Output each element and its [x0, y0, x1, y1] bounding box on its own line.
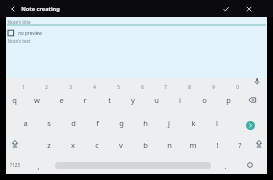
button[interactable]: z: [38, 137, 60, 153]
staticText: k: [191, 118, 196, 128]
button[interactable]: Note's title: [7, 17, 127, 26]
button[interactable]: !: [206, 137, 228, 153]
button[interactable]: [241, 116, 259, 134]
button[interactable]: m: [182, 137, 204, 153]
staticText: d: [71, 118, 76, 128]
button[interactable]: Note's text: [7, 36, 127, 45]
staticText: 3: [69, 84, 72, 90]
button[interactable]: [219, 2, 233, 16]
button[interactable]: n: [158, 137, 180, 153]
button[interactable]: p: [217, 92, 239, 108]
button[interactable]: k: [182, 115, 204, 131]
staticText: l: [216, 118, 218, 128]
button[interactable]: x: [62, 137, 84, 153]
staticText: m: [189, 140, 197, 150]
staticText: g: [119, 118, 124, 128]
button[interactable]: ,: [27, 158, 49, 174]
staticText: w: [34, 95, 40, 105]
staticText: h: [143, 118, 148, 128]
button[interactable]: r: [74, 92, 96, 108]
staticText: 9: [212, 84, 215, 90]
button[interactable]: e: [50, 92, 72, 108]
button[interactable]: .: [214, 158, 236, 174]
staticText: 5: [117, 84, 120, 90]
staticText: x: [71, 140, 75, 150]
staticText: Note's title: [7, 19, 31, 25]
staticText: y: [131, 95, 135, 105]
button[interactable]: o: [193, 92, 215, 108]
staticText: 6: [141, 84, 144, 90]
button[interactable]: q: [3, 92, 25, 108]
staticText: a: [23, 118, 28, 128]
staticText: 2: [45, 84, 48, 90]
staticText: 0: [236, 84, 239, 90]
button[interactable]: ?123: [4, 158, 26, 172]
staticText: ,: [37, 161, 40, 171]
staticText: 8: [188, 84, 191, 90]
staticText: s: [47, 118, 51, 128]
staticText: .: [224, 161, 227, 171]
button[interactable]: [242, 2, 256, 16]
staticText: Note's text: [7, 38, 31, 44]
staticText: ?123: [10, 162, 20, 168]
staticText: q: [12, 95, 17, 105]
button[interactable]: w: [26, 92, 48, 108]
button[interactable]: [251, 136, 267, 152]
staticText: no preview: [18, 30, 42, 36]
staticText: r: [83, 95, 87, 105]
button[interactable]: d: [62, 115, 84, 131]
button[interactable]: a: [14, 115, 36, 131]
button[interactable]: no preview: [7, 28, 67, 38]
staticText: j: [168, 118, 170, 128]
button[interactable]: b: [134, 137, 156, 153]
button[interactable]: [6, 2, 20, 16]
staticText: 7: [164, 84, 167, 90]
staticText: v: [119, 140, 123, 150]
button[interactable]: h: [134, 115, 156, 131]
staticText: !: [216, 140, 219, 150]
button[interactable]: c: [86, 137, 108, 153]
staticText: Note creating: [21, 5, 60, 13]
button[interactable]: s: [38, 115, 60, 131]
button[interactable]: l: [206, 115, 228, 131]
staticText: n: [167, 140, 172, 150]
staticText: i: [179, 95, 181, 105]
button[interactable]: [244, 93, 260, 107]
button[interactable]: [243, 158, 257, 172]
staticText: t: [108, 95, 111, 105]
button[interactable]: v: [110, 137, 132, 153]
button[interactable]: g: [110, 115, 132, 131]
staticText: 1: [22, 84, 25, 90]
button[interactable]: i: [169, 92, 191, 108]
staticText: ?: [238, 140, 242, 150]
staticText: f: [96, 118, 99, 128]
button[interactable]: j: [158, 115, 180, 131]
staticText: o: [202, 95, 207, 105]
staticText: p: [226, 95, 231, 105]
staticText: u: [154, 95, 159, 105]
button[interactable]: f: [86, 115, 108, 131]
button[interactable]: t: [98, 92, 120, 108]
button[interactable]: y: [122, 92, 144, 108]
staticText: z: [47, 140, 51, 150]
button[interactable]: u: [145, 92, 167, 108]
staticText: e: [59, 95, 64, 105]
button[interactable]: ?: [229, 137, 251, 153]
staticText: b: [143, 140, 148, 150]
staticText: 4: [93, 84, 96, 90]
button[interactable]: [7, 136, 23, 152]
staticText: c: [95, 140, 99, 150]
